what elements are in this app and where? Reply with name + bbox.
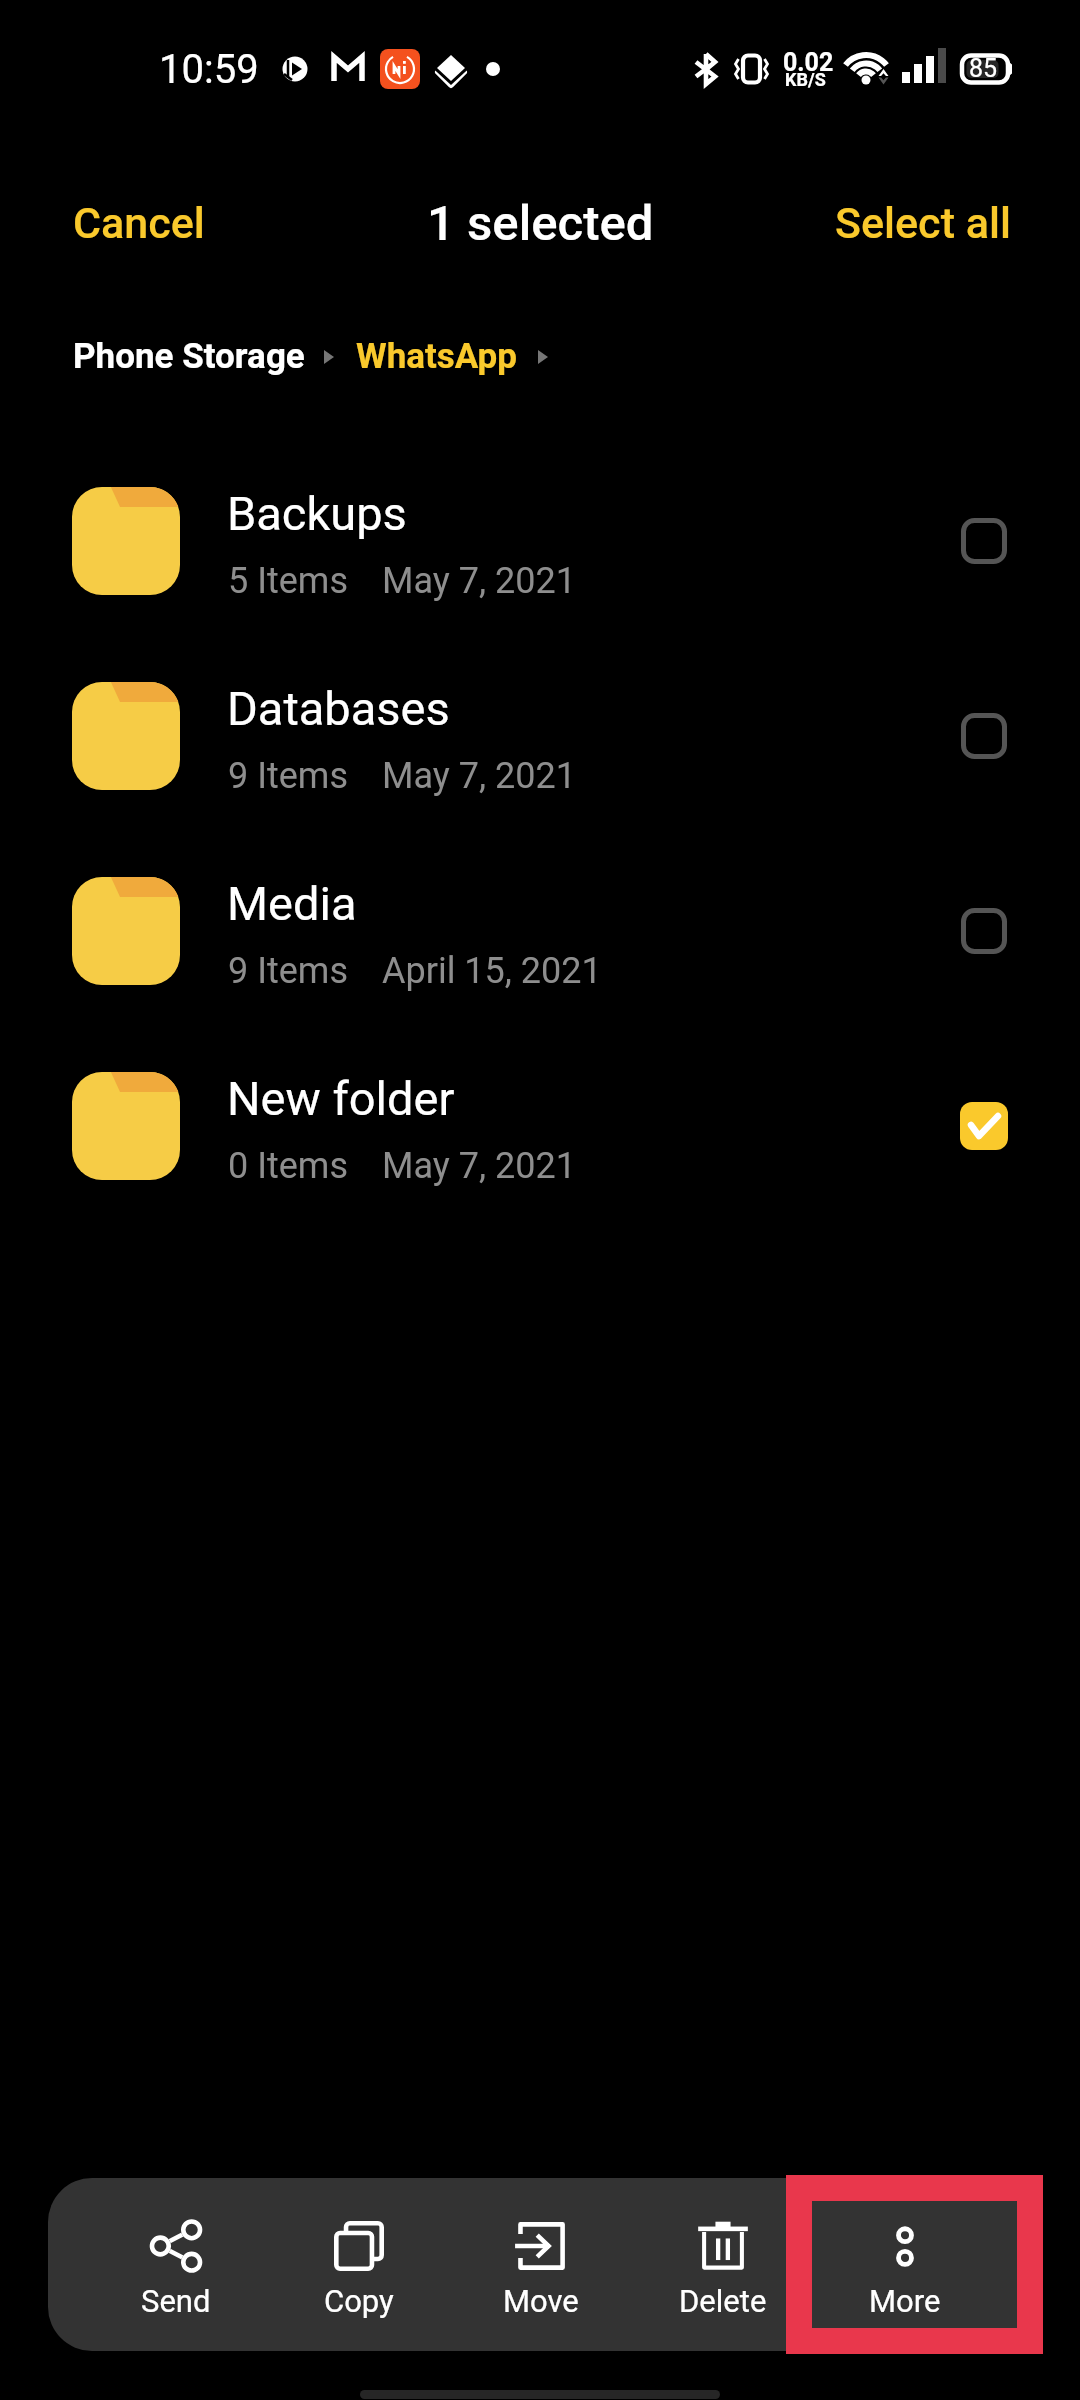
staticText: KB/S [785,69,826,90]
button[interactable]: Not selected [936,493,1032,589]
staticText: Move [503,2283,579,2319]
button[interactable]: WhatsApp [356,336,517,377]
other: Copy [332,2219,386,2273]
button[interactable]: Backups [0,443,1080,638]
button[interactable]: Cancel [48,184,230,262]
staticText: New folder [227,1071,455,1126]
staticText: Send [141,2283,211,2319]
other: Send [149,2219,203,2273]
staticText: Select all [835,198,1011,248]
staticText: More [869,2283,941,2319]
staticText: 85 [969,54,998,83]
staticText: WhatsApp [356,336,517,377]
staticText: Phone Storage [73,336,305,377]
button[interactable]: Selected [936,1078,1032,1174]
staticText: Databases [227,681,450,736]
staticText: 10:59 [159,46,259,93]
staticText: Delete [679,2283,767,2319]
staticText: 5 Items [228,560,348,602]
button[interactable]: Delete [632,2178,814,2351]
staticText: May 7, 2021 [382,1145,576,1187]
other: Move [514,2219,568,2273]
staticText: 0 Items [228,1145,348,1187]
staticText: Cancel [73,198,205,248]
button[interactable]: Not selected [936,688,1032,784]
staticText: April 15, 2021 [382,950,602,992]
button[interactable]: More options [814,2178,996,2351]
button[interactable]: New folder [0,1028,1080,1223]
button[interactable]: Not selected [936,883,1032,979]
button[interactable]: Copy [267,2178,450,2351]
staticText: 9 Items [228,950,348,992]
button[interactable]: Select all [810,184,1036,262]
other: More options [878,2219,932,2273]
button[interactable]: Phone Storage [73,336,305,377]
staticText: May 7, 2021 [382,755,576,797]
other: Delete [696,2219,750,2273]
staticText: 9 Items [228,755,348,797]
staticText: May 7, 2021 [382,560,576,602]
button[interactable]: Media [0,833,1080,1028]
button[interactable]: Move [450,2178,632,2351]
button[interactable]: Databases [0,638,1080,833]
staticText: Copy [324,2283,394,2319]
staticText: 0.02 [783,48,834,77]
staticText: Backups [227,486,407,541]
staticText: 1 selected [427,195,654,252]
staticText: Media [227,876,357,931]
button[interactable]: Send [84,2178,267,2351]
